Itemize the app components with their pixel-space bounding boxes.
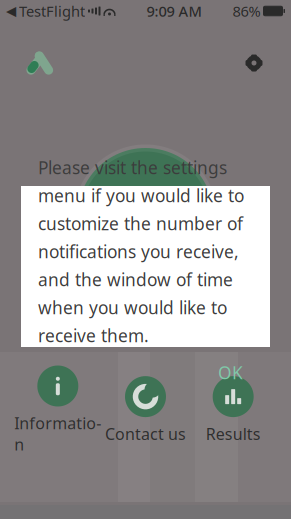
staticText: Please visit the settings menu if you wo… — [38, 156, 244, 347]
staticText: Information — [14, 412, 101, 455]
staticText: Results — [206, 423, 261, 444]
button[interactable]: OK — [208, 355, 253, 390]
button[interactable]: Results — [189, 372, 277, 448]
staticText: 86% — [232, 1, 260, 21]
staticText: 9:09 AM — [146, 1, 201, 21]
button[interactable]: Settings — [239, 48, 269, 78]
button[interactable]: Home — [22, 46, 56, 80]
staticText: OK — [218, 361, 243, 384]
staticText: ◀ — [6, 3, 16, 18]
staticText: Contact us — [105, 423, 186, 444]
button[interactable]: Information — [14, 361, 102, 459]
button[interactable]: Contact us — [102, 372, 189, 448]
staticText: TestFlight — [19, 1, 85, 21]
